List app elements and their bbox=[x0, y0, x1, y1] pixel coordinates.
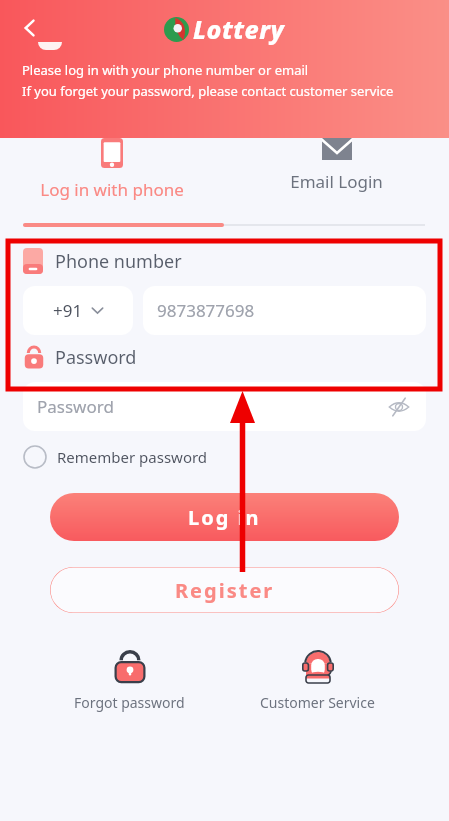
button[interactable]: Forgot password bbox=[74, 647, 185, 712]
staticText: Log in bbox=[188, 504, 261, 531]
staticText: Password bbox=[37, 395, 114, 418]
button[interactable]: Log in with phone bbox=[0, 138, 224, 201]
staticText: If you forget your password, please cont… bbox=[22, 82, 394, 100]
button[interactable]: Register bbox=[50, 567, 399, 613]
staticText: 9873877698 bbox=[157, 299, 255, 322]
staticText: Lottery bbox=[193, 12, 285, 46]
staticText: Register bbox=[175, 577, 275, 604]
staticText: Password bbox=[55, 345, 137, 370]
button[interactable]: +91 bbox=[23, 286, 133, 335]
button[interactable]: Show password bbox=[384, 392, 414, 422]
staticText: Phone number bbox=[55, 249, 182, 274]
staticText: +91 bbox=[53, 299, 83, 322]
button[interactable]: Password bbox=[23, 382, 426, 431]
staticText: Customer Service bbox=[260, 693, 375, 712]
button[interactable]: Email Login bbox=[224, 138, 449, 193]
staticText: Remember password bbox=[57, 447, 208, 467]
staticText: Forgot password bbox=[74, 693, 185, 712]
button[interactable]: Back bbox=[10, 8, 50, 48]
button[interactable]: 9873877698 bbox=[143, 286, 426, 335]
button[interactable]: Remember password bbox=[23, 445, 208, 469]
button[interactable]: Customer Service bbox=[260, 647, 375, 712]
staticText: Log in with phone bbox=[40, 178, 184, 201]
button[interactable]: Log in bbox=[50, 493, 399, 541]
staticText: Please log in with your phone number or … bbox=[22, 61, 309, 79]
staticText: Email Login bbox=[290, 170, 383, 193]
